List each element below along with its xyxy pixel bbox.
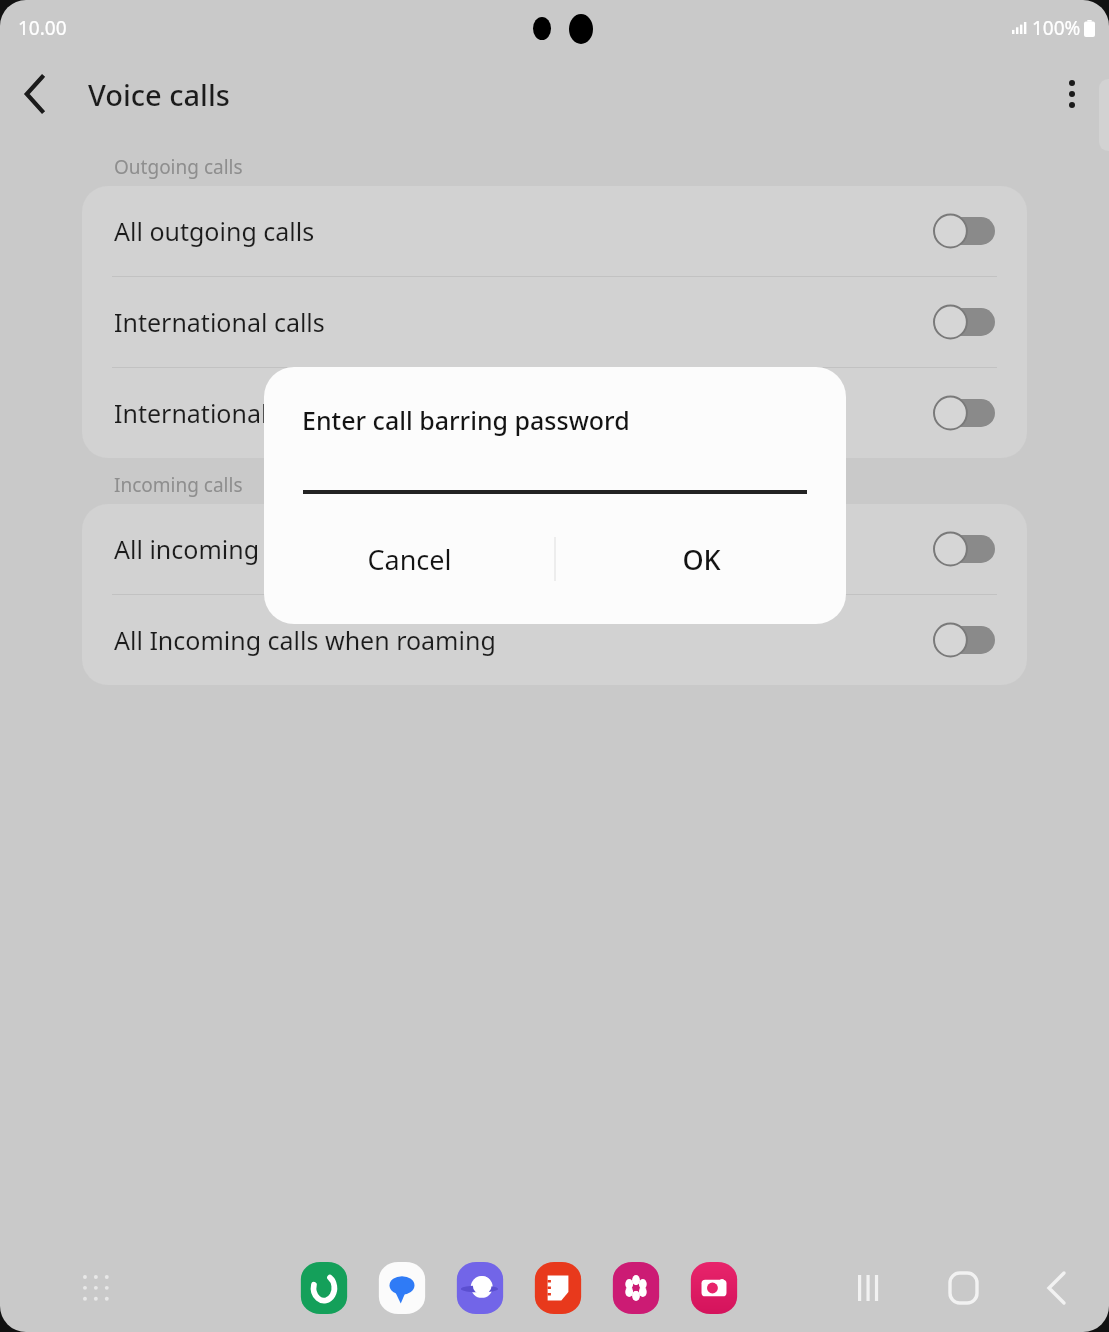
button[interactable] — [935, 305, 995, 339]
button[interactable]: Notes — [530, 1260, 586, 1316]
button[interactable]: Recents — [845, 1264, 893, 1312]
button[interactable] — [935, 214, 995, 248]
button[interactable]: Phone — [296, 1260, 352, 1316]
button[interactable]: Internet — [452, 1260, 508, 1316]
button[interactable]: Gallery — [608, 1260, 664, 1316]
button[interactable]: Back — [10, 68, 62, 120]
staticText: OK — [682, 541, 721, 578]
staticText: All Incoming calls when roaming — [114, 623, 935, 657]
button[interactable]: More options — [1047, 69, 1097, 119]
button[interactable] — [935, 623, 995, 657]
staticText: All outgoing calls — [114, 214, 935, 248]
button[interactable] — [935, 396, 995, 430]
staticText: International calls except to home — [114, 396, 935, 430]
button[interactable]: Camera — [686, 1260, 742, 1316]
button[interactable]: Apps — [74, 1266, 118, 1310]
button[interactable]: Home — [939, 1264, 987, 1312]
button[interactable] — [935, 532, 995, 566]
button[interactable]: All Incoming calls when roaming — [82, 595, 1027, 685]
button[interactable]: Back — [1033, 1264, 1081, 1312]
button[interactable]: International calls except to home — [82, 368, 1027, 458]
button[interactable]: OK — [556, 494, 846, 624]
staticText: International calls — [114, 305, 935, 339]
button[interactable]: International calls — [82, 277, 1027, 367]
staticText: Voice calls — [88, 75, 230, 114]
staticText: Enter call barring password — [302, 403, 630, 437]
button[interactable]: All outgoing calls — [82, 186, 1027, 276]
staticText: Outgoing calls — [114, 154, 243, 180]
staticText: Incoming calls — [114, 472, 243, 498]
staticText: Cancel — [367, 541, 452, 578]
button[interactable]: Cancel — [264, 494, 554, 624]
button[interactable]: Messages — [374, 1260, 430, 1316]
staticText: 10.00 — [18, 15, 67, 41]
staticText: All incoming calls — [114, 532, 935, 566]
staticText: 100% — [1032, 15, 1081, 41]
button[interactable]: All incoming calls — [82, 504, 1027, 594]
